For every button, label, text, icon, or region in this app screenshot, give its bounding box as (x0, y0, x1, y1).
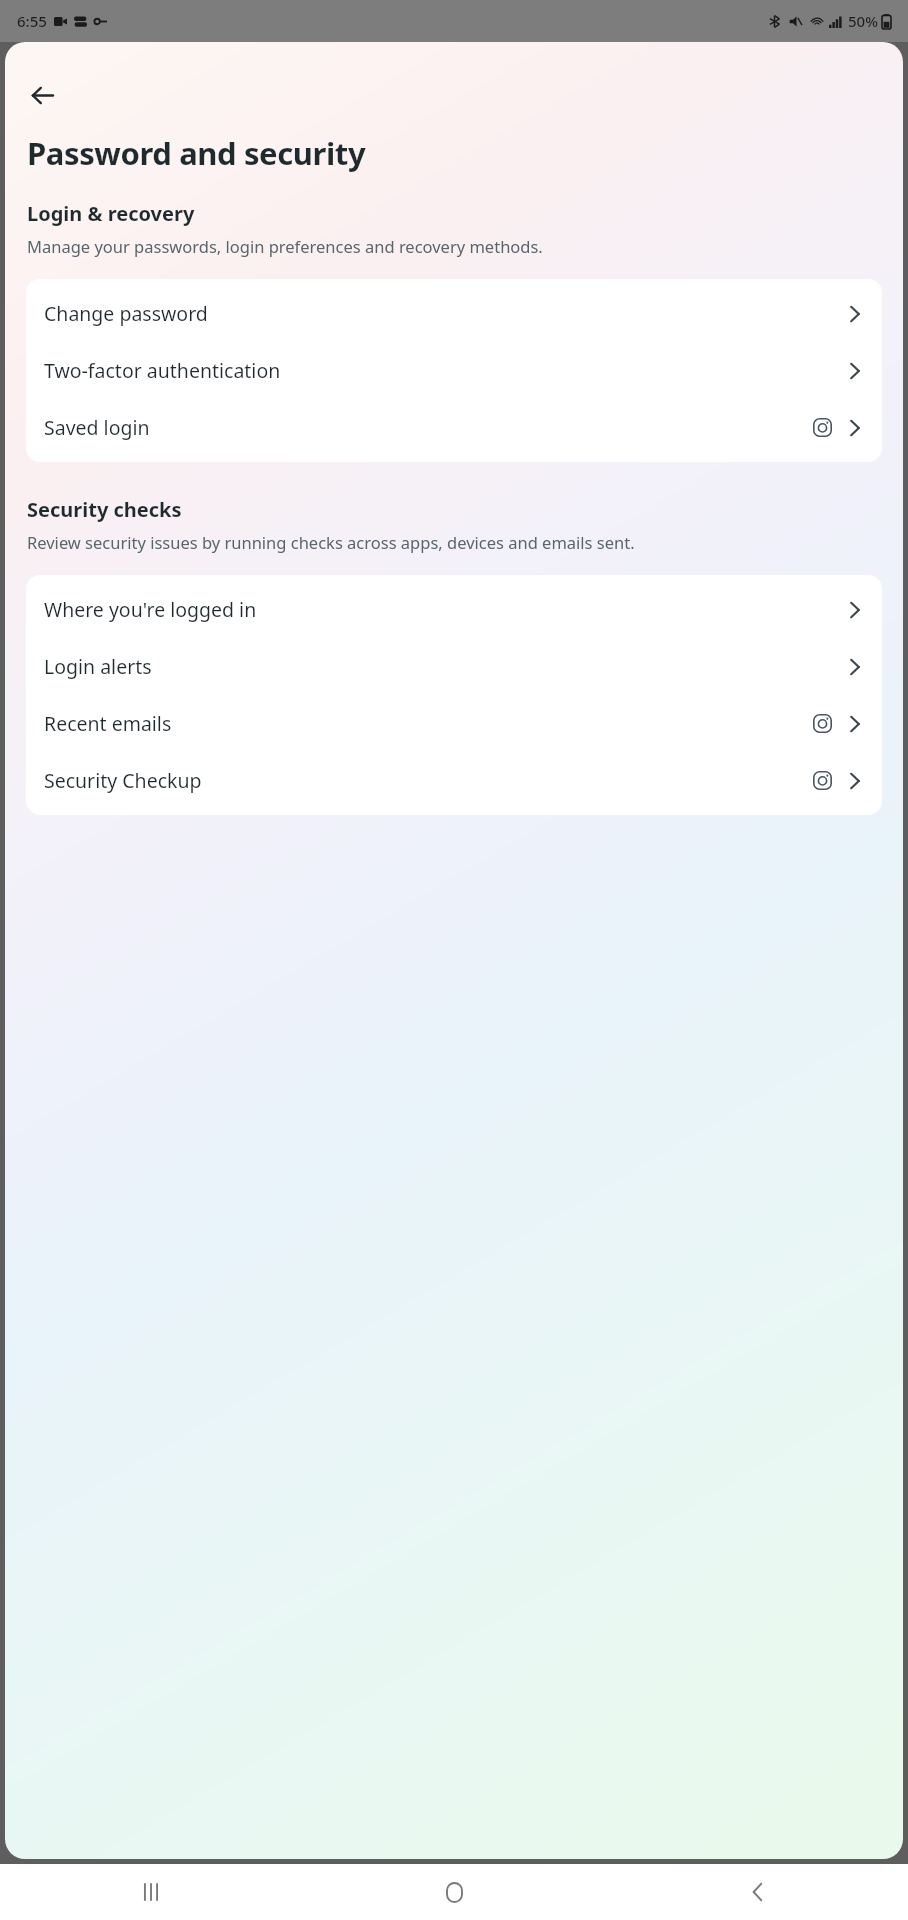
staticText: Two-factor authentication (44, 357, 844, 384)
staticText: Review security issues by running checks… (27, 531, 635, 553)
staticText: 6:55 (17, 11, 47, 31)
button[interactable]: Recent emails (26, 695, 882, 752)
button[interactable]: Back (725, 1864, 789, 1920)
button[interactable]: Back (17, 70, 67, 120)
button[interactable]: Security Checkup (26, 752, 882, 809)
staticText: Security Checkup (44, 767, 813, 794)
staticText: Manage your passwords, login preferences… (27, 235, 543, 257)
button[interactable]: Home (422, 1864, 486, 1920)
staticText: Password and security (27, 132, 366, 174)
button[interactable]: Recent apps (119, 1864, 183, 1920)
staticText: Security checks (27, 496, 182, 523)
staticText: Recent emails (44, 710, 813, 737)
staticText: Login alerts (44, 653, 844, 680)
staticText: Login & recovery (27, 200, 195, 227)
button[interactable]: Login alerts (26, 638, 882, 695)
staticText: Saved login (44, 414, 813, 441)
staticText: Change password (44, 300, 844, 327)
staticText: Where you're logged in (44, 596, 844, 623)
staticText: 50% (848, 11, 878, 31)
button[interactable]: Saved login (26, 399, 882, 456)
button[interactable]: Where you're logged in (26, 581, 882, 638)
button[interactable]: Change password (26, 285, 882, 342)
button[interactable]: Two-factor authentication (26, 342, 882, 399)
